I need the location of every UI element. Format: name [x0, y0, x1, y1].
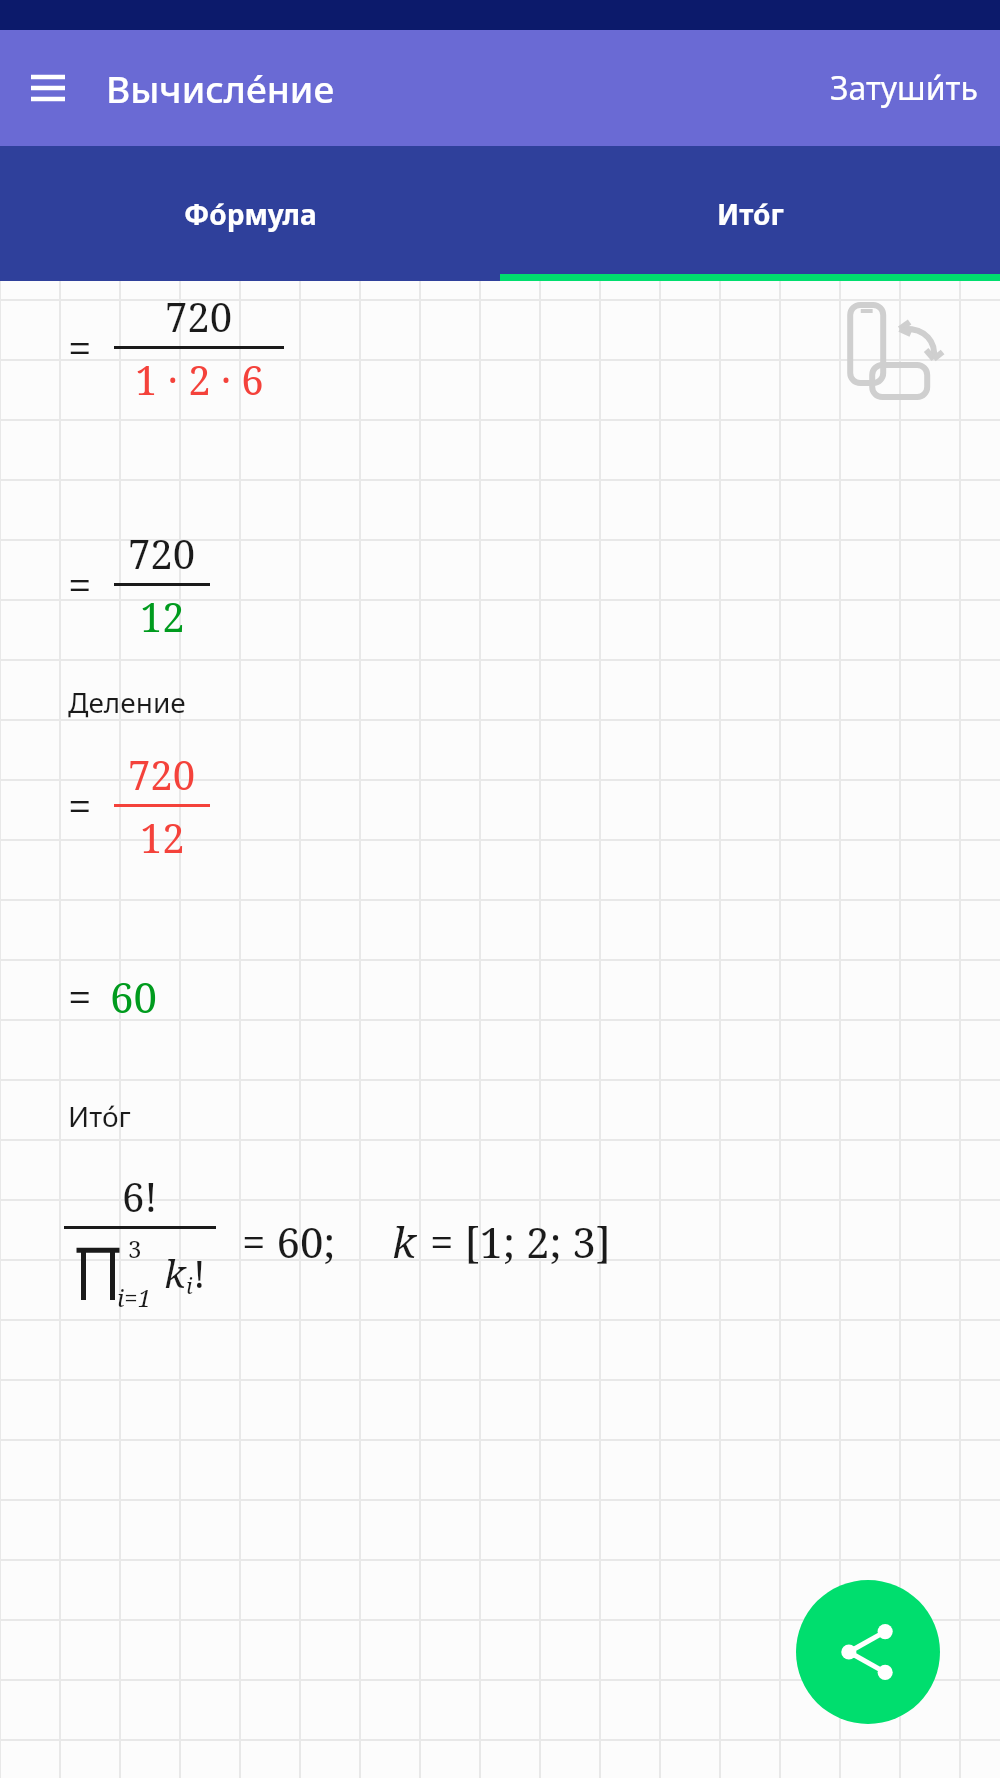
button[interactable]: Ито́г: [500, 146, 1000, 281]
staticText: 720: [165, 289, 233, 343]
staticText: 60: [110, 968, 157, 1025]
staticText: 720: [128, 526, 196, 580]
staticText: Фо́рмула: [184, 195, 317, 233]
button[interactable]: Меню: [22, 62, 74, 114]
staticText: 6!: [122, 1169, 158, 1223]
staticText: k: [392, 1213, 416, 1270]
staticText: !: [193, 1247, 206, 1299]
staticText: = [1; 2; 3]: [430, 1213, 611, 1270]
button[interactable]: Поделиться: [796, 1580, 940, 1724]
staticText: i=1: [117, 1281, 152, 1314]
staticText: 720: [128, 747, 196, 801]
staticText: Ито́г: [68, 1097, 131, 1135]
staticText: =: [68, 777, 92, 834]
staticText: 12: [140, 810, 185, 864]
staticText: =: [68, 556, 92, 613]
staticText: = 60;: [242, 1213, 336, 1270]
button[interactable]: Повернуть экран: [848, 303, 958, 403]
staticText: Деление: [68, 683, 186, 721]
button[interactable]: Вычисле́ние: [106, 63, 335, 113]
staticText: =: [68, 968, 92, 1025]
button[interactable]: Фо́рмула: [0, 146, 500, 281]
staticText: 1 · 2 · 6: [135, 352, 264, 406]
staticText: Затуши́ть: [830, 66, 978, 110]
staticText: k: [164, 1247, 186, 1299]
staticText: Ито́г: [717, 195, 784, 233]
staticText: =: [68, 319, 92, 376]
staticText: 12: [140, 589, 185, 643]
staticText: i: [186, 1270, 193, 1300]
staticText: 3: [128, 1232, 142, 1265]
button[interactable]: Затуши́ть: [808, 52, 1000, 124]
